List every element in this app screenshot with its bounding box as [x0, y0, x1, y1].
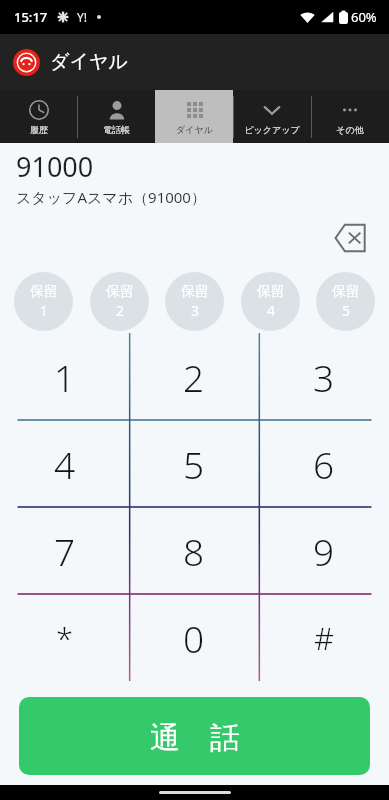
staticText: 2: [116, 301, 125, 320]
button[interactable]: 8: [129, 507, 259, 594]
button[interactable]: #: [259, 594, 389, 681]
button[interactable]: 履歴: [0, 90, 77, 143]
button[interactable]: 保留: [14, 272, 73, 331]
staticText: 保留: [30, 283, 58, 301]
button[interactable]: 1: [0, 333, 129, 420]
staticText: その他: [336, 124, 364, 135]
staticText: スタッフAスマホ（91000）: [16, 187, 206, 207]
staticText: 保留: [106, 283, 134, 301]
staticText: ピックアップ: [244, 124, 300, 135]
staticText: 9: [313, 526, 335, 576]
staticText: 保留: [257, 283, 285, 301]
staticText: 3: [191, 301, 200, 320]
staticText: 履歴: [30, 124, 48, 135]
staticText: 1: [54, 352, 76, 402]
staticText: 5: [183, 439, 205, 489]
staticText: ダイヤル: [176, 124, 213, 135]
staticText: 1: [40, 301, 49, 320]
staticText: 4: [54, 439, 76, 489]
staticText: 60%: [351, 8, 377, 26]
staticText: Y!: [77, 9, 88, 25]
staticText: ダイヤル: [50, 50, 128, 74]
button[interactable]: ピックアップ: [233, 90, 311, 143]
staticText: 保留: [332, 283, 360, 301]
staticText: 2: [183, 352, 205, 402]
staticText: 4: [267, 301, 276, 320]
button[interactable]: 保留: [316, 272, 375, 331]
button[interactable]: 保留: [165, 272, 224, 331]
button[interactable]: その他: [311, 90, 389, 143]
staticText: 91000: [16, 148, 94, 185]
button[interactable]: 2: [129, 333, 259, 420]
staticText: 15:17: [14, 8, 48, 26]
button[interactable]: 3: [259, 333, 389, 420]
staticText: 保留: [181, 283, 209, 301]
staticText: *: [56, 617, 74, 659]
button[interactable]: 4: [0, 420, 129, 507]
staticText: 7: [54, 526, 76, 576]
staticText: 通 話: [150, 716, 240, 757]
button[interactable]: 保留: [90, 272, 149, 331]
button[interactable]: Backspace: [333, 220, 369, 256]
button[interactable]: 7: [0, 507, 129, 594]
staticText: #: [314, 617, 335, 659]
button[interactable]: ダイヤル: [155, 90, 233, 143]
staticText: 0: [183, 613, 205, 663]
button[interactable]: 0: [129, 594, 259, 681]
button[interactable]: 6: [259, 420, 389, 507]
button[interactable]: 9: [259, 507, 389, 594]
staticText: 8: [183, 526, 205, 576]
button[interactable]: 通 話: [19, 697, 370, 775]
button[interactable]: *: [0, 594, 129, 681]
button[interactable]: 保留: [241, 272, 300, 331]
staticText: 電話帳: [103, 124, 130, 135]
staticText: 5: [342, 301, 351, 320]
button[interactable]: 5: [129, 420, 259, 507]
button[interactable]: 電話帳: [77, 90, 155, 143]
staticText: 3: [313, 352, 335, 402]
staticText: 6: [313, 439, 335, 489]
